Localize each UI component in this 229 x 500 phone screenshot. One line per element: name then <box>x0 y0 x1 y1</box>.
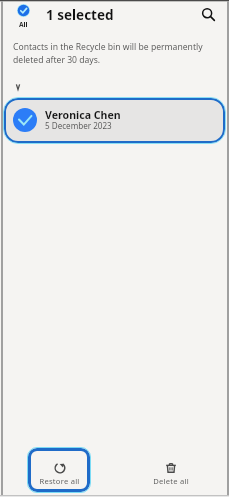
button[interactable]: Expand <box>11 80 25 94</box>
staticText: Delete all <box>153 476 189 486</box>
button[interactable]: Delete all <box>139 447 202 493</box>
staticText: All <box>19 20 28 29</box>
staticText: Restore all <box>39 476 80 486</box>
staticText: 5 December 2023 <box>45 120 112 131</box>
staticText: Veronica Chen <box>45 108 121 122</box>
staticText: 1 selected <box>46 6 114 24</box>
button[interactable]: All <box>13 3 34 30</box>
button[interactable]: Veronica Chen <box>6 100 223 141</box>
button[interactable]: Search <box>199 5 218 24</box>
button[interactable]: Restore all <box>28 448 90 492</box>
staticText: Contacts in the Recycle bin will be perm… <box>13 41 208 66</box>
